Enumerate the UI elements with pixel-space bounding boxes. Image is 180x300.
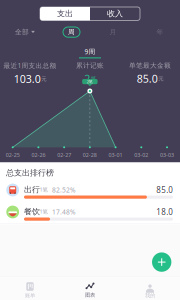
button[interactable]: 收入 — [90, 7, 140, 20]
staticText: 全部 — [15, 28, 29, 36]
staticText: 02-28 — [83, 151, 97, 158]
staticText: 总支出排行榜 — [6, 168, 54, 178]
staticText: 1笔 — [39, 186, 47, 193]
staticText: 元 — [158, 75, 163, 82]
staticText: 85.0 — [137, 71, 158, 86]
staticText: 18.0 — [156, 206, 173, 217]
staticText: 餐饮 — [24, 207, 40, 216]
staticText: 出行 — [24, 185, 40, 194]
staticText: 图表 — [85, 292, 95, 298]
staticText: 1笔 — [39, 208, 47, 215]
staticText: 17.48% — [52, 208, 76, 216]
staticText: 元 — [41, 76, 46, 82]
staticText: 收入 — [107, 9, 123, 19]
button[interactable]: 餐饮 — [0, 202, 180, 224]
staticText: 2笔 — [87, 79, 93, 84]
staticText: 03-03 — [160, 151, 174, 158]
staticText: 账单 — [25, 292, 35, 299]
button[interactable]: 全部 — [15, 27, 35, 37]
staticText: 03-01 — [109, 151, 123, 158]
staticText: 103.0 — [14, 72, 41, 86]
button[interactable]: 月 — [106, 27, 120, 37]
staticText: 02-26 — [31, 151, 45, 158]
button[interactable]: 周 — [63, 27, 80, 37]
staticText: 累计记账 — [76, 61, 104, 69]
button[interactable]: 我的 — [120, 280, 180, 300]
staticText: 月 — [109, 28, 116, 36]
button[interactable]: 出行 — [0, 180, 180, 202]
staticText: 周 — [68, 28, 75, 36]
staticText: 9周 — [84, 47, 95, 56]
staticText: 支出 — [57, 9, 73, 19]
staticText: 单笔最大金额 — [129, 61, 171, 69]
staticText: 笔 — [91, 75, 96, 82]
button[interactable]: 支出 — [40, 7, 90, 20]
staticText: 最近1周支出总额 — [3, 61, 56, 70]
staticText: 02-25 — [6, 151, 20, 158]
staticText: 我的 — [145, 292, 155, 299]
staticText: 03-02 — [134, 151, 148, 158]
staticText: 2 — [84, 71, 90, 86]
staticText: 02-27 — [57, 151, 71, 158]
staticText: 85.0 — [156, 184, 173, 195]
button[interactable]: 年 — [153, 27, 167, 37]
staticText: 82.52% — [52, 186, 76, 194]
button[interactable]: 账单 — [0, 280, 60, 300]
button[interactable]: 图表 — [60, 280, 120, 300]
button[interactable]: Add record — [152, 252, 171, 272]
staticText: 年 — [156, 28, 163, 36]
